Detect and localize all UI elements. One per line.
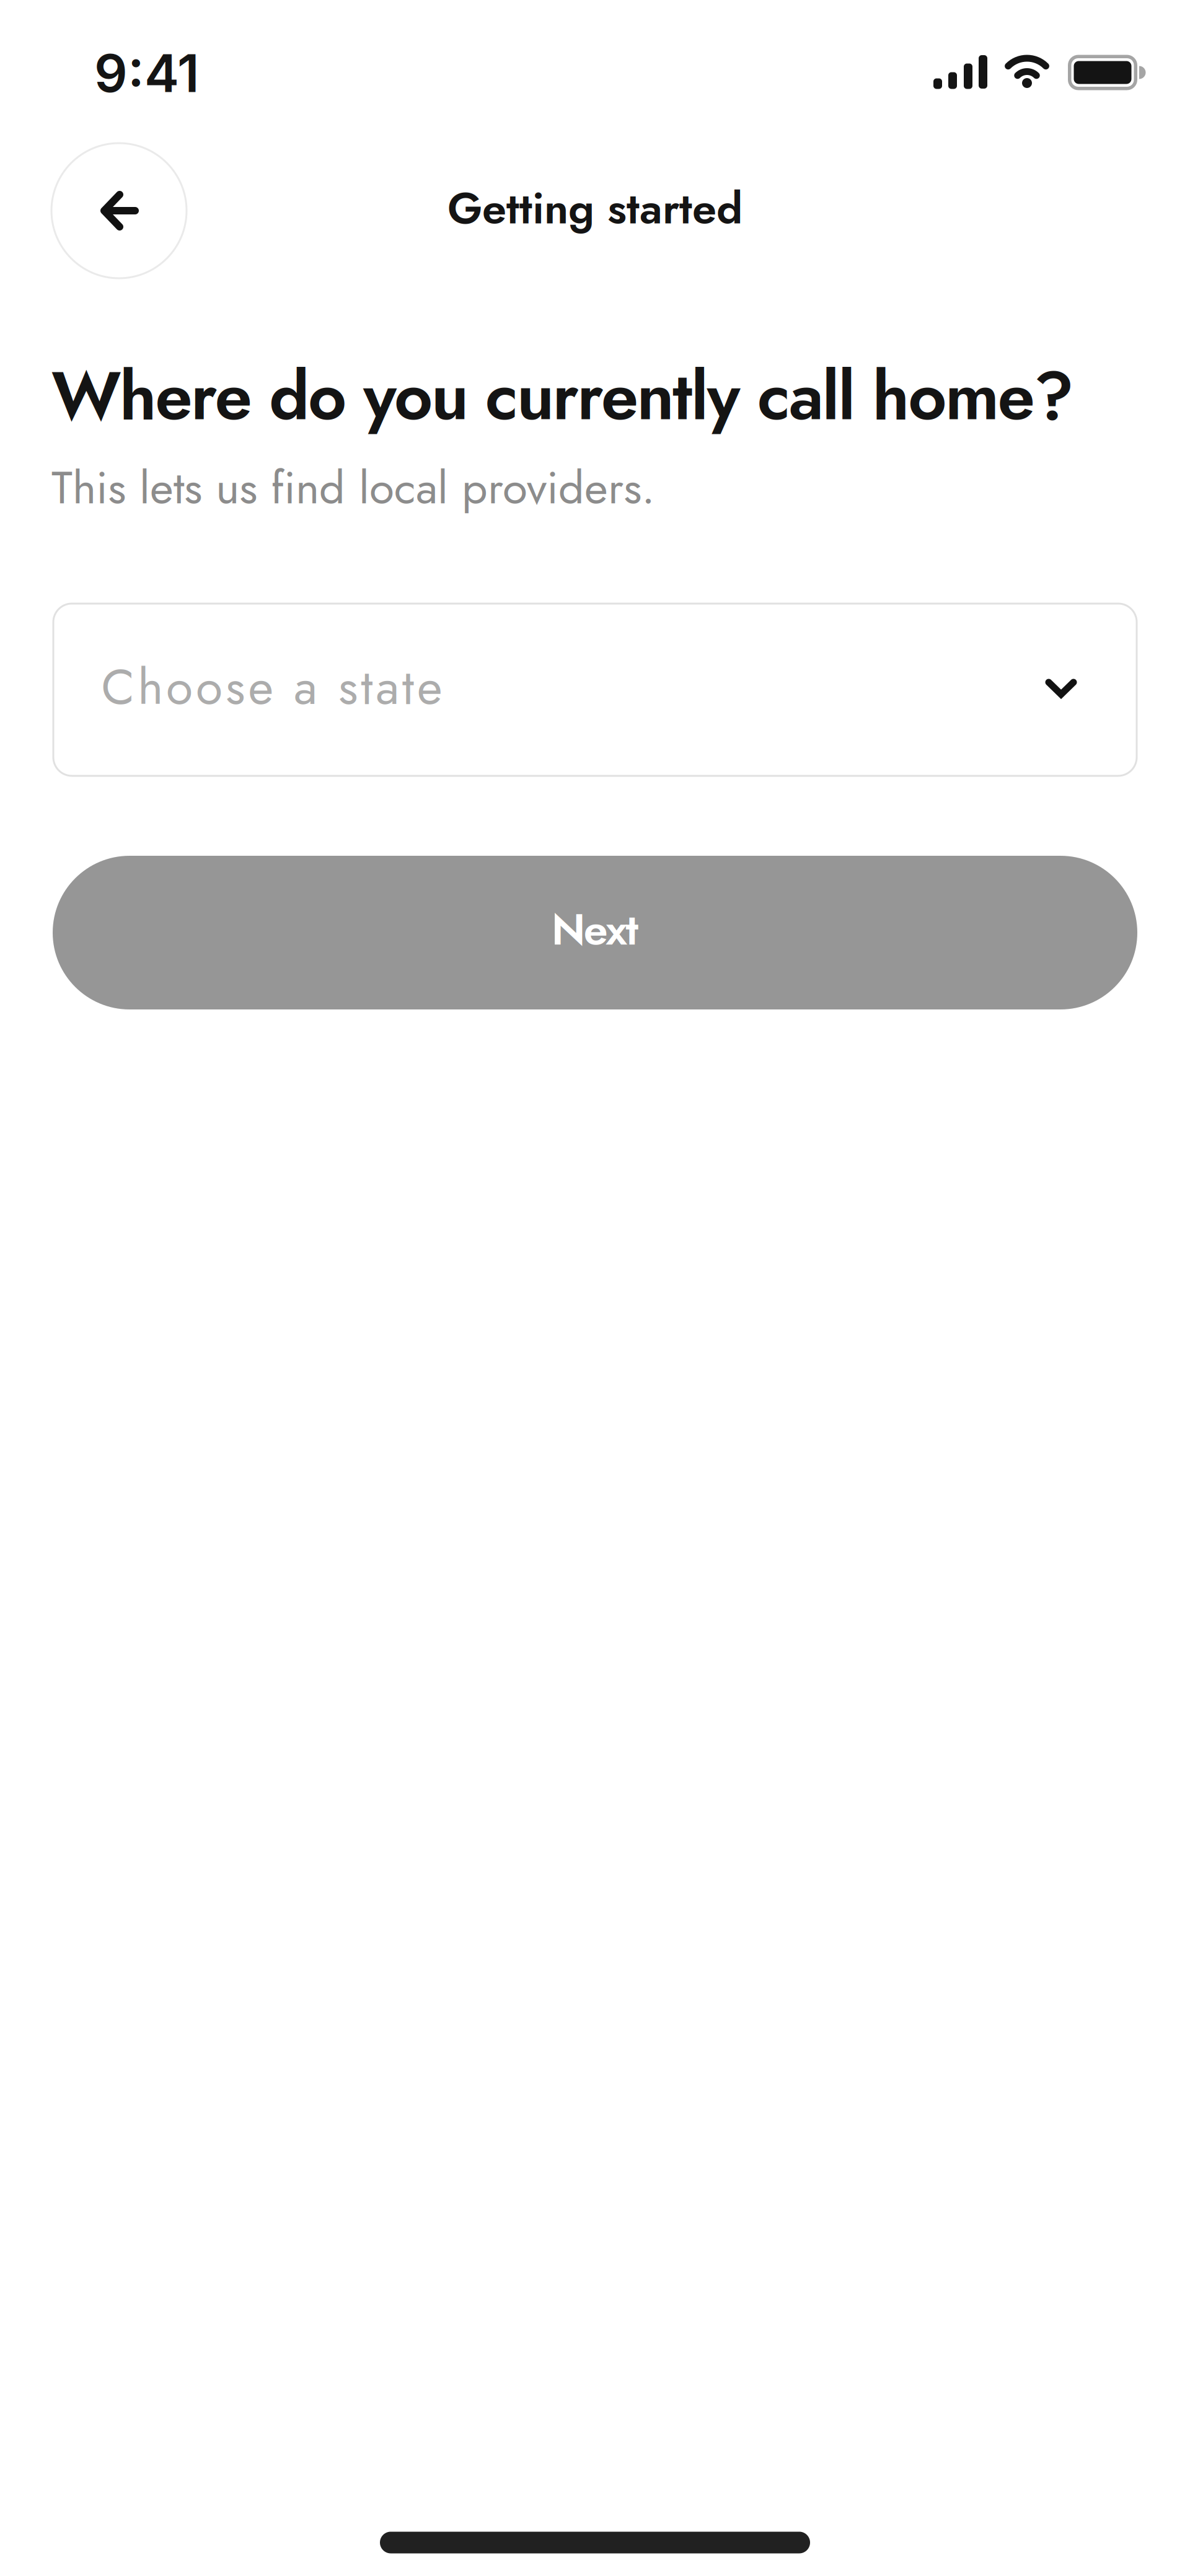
staticText: This lets us find local providers. [51, 455, 655, 520]
button[interactable]: Back [51, 142, 187, 279]
staticText: Next [551, 898, 639, 961]
button[interactable]: Next [53, 856, 1137, 1009]
staticText: Getting started [447, 177, 743, 240]
staticText: Where do you currently call home? [51, 348, 1074, 444]
staticText: 9:41 [94, 42, 200, 105]
button[interactable]: Choose a state [52, 603, 1138, 777]
staticText: Choose a state [101, 652, 442, 722]
